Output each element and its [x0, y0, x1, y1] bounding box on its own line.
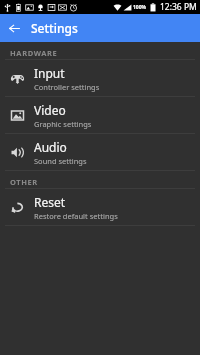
- staticText: 12:36 PM: [160, 1, 197, 13]
- staticText: Settings: [31, 20, 78, 36]
- staticText: 100%: [133, 4, 147, 11]
- staticText: OTHER: [10, 177, 38, 187]
- staticText: Sound settings: [34, 156, 87, 166]
- staticText: Audio: [34, 139, 67, 155]
- button[interactable]: Video: [0, 97, 200, 133]
- button[interactable]: Back: [4, 18, 24, 38]
- button[interactable]: Reset: [0, 189, 200, 225]
- button[interactable]: Input: [0, 60, 200, 96]
- staticText: Reset: [34, 194, 66, 210]
- staticText: Controller settings: [34, 82, 100, 92]
- staticText: HARDWARE: [10, 48, 58, 58]
- staticText: Video: [34, 102, 66, 118]
- button[interactable]: Audio: [0, 134, 200, 170]
- staticText: Input: [34, 65, 65, 81]
- staticText: Graphic settings: [34, 119, 92, 129]
- staticText: Restore default settings: [34, 211, 118, 221]
